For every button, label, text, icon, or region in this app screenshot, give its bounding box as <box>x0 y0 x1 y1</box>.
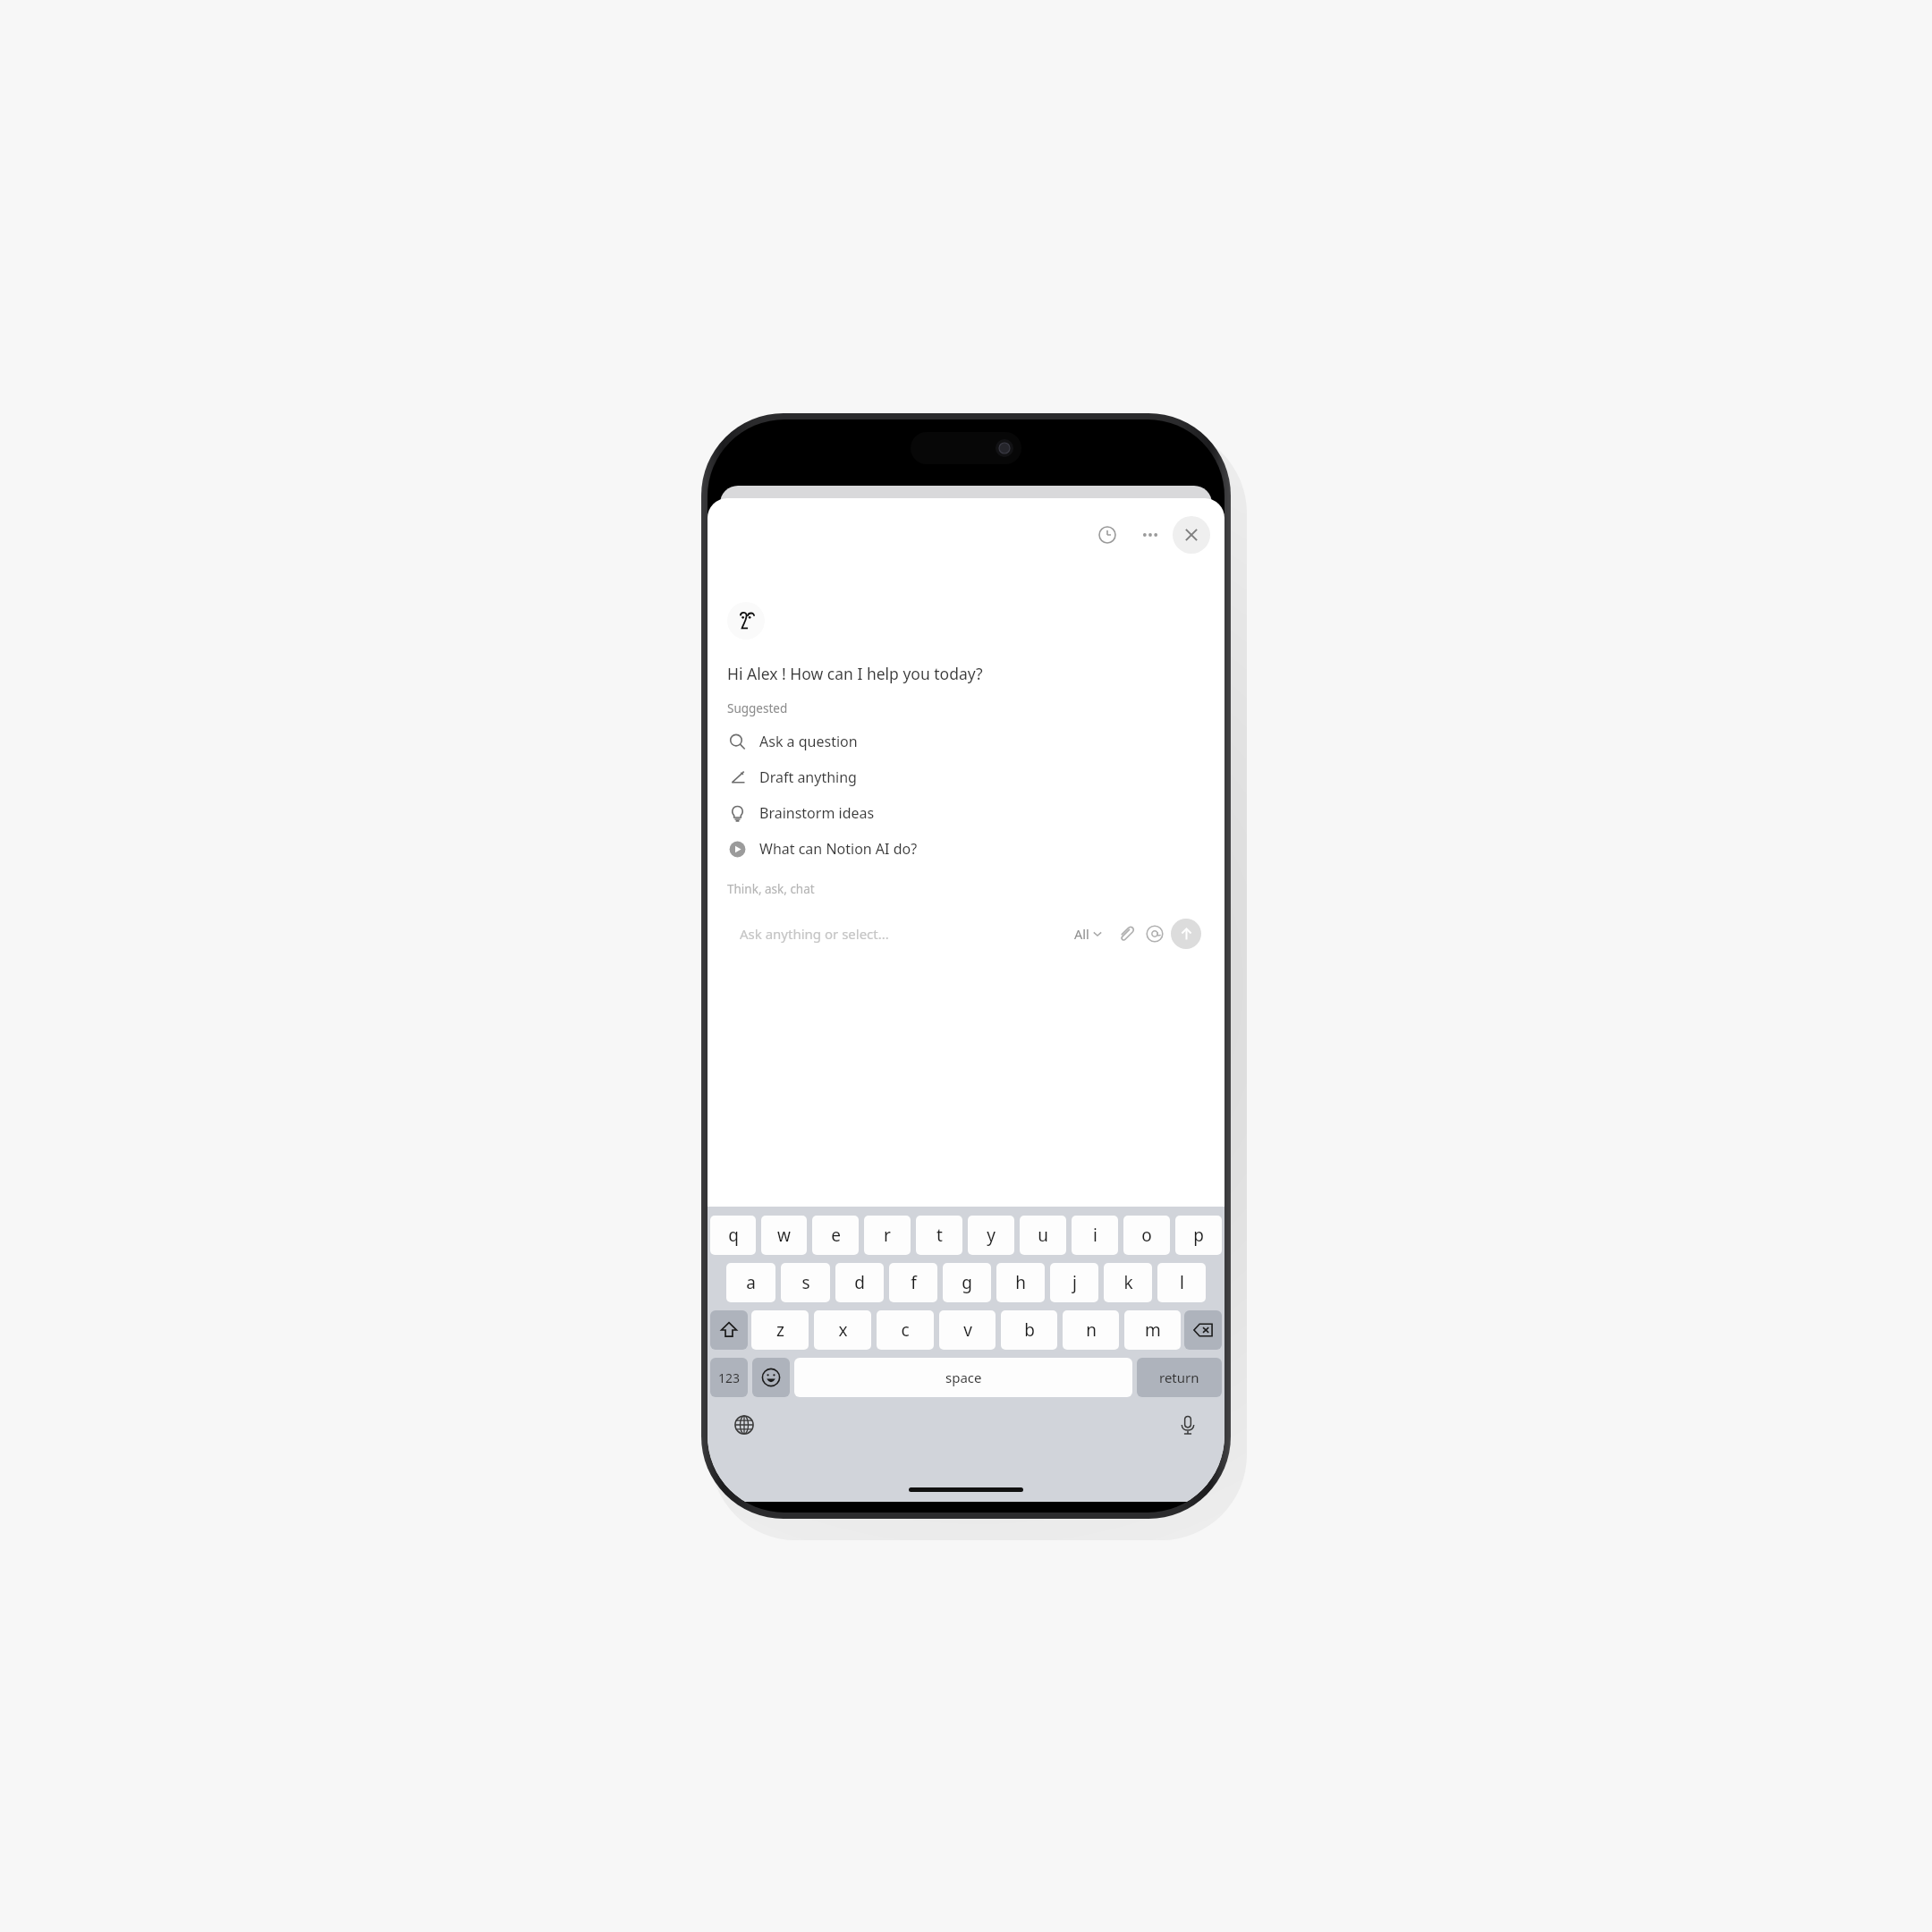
button[interactable]: Emoji <box>752 1358 790 1397</box>
button[interactable]: Backspace <box>1184 1310 1222 1350</box>
button[interactable]: x <box>814 1310 871 1350</box>
button[interactable]: s <box>781 1263 830 1302</box>
staticText: s <box>801 1271 810 1294</box>
button[interactable]: v <box>939 1310 996 1350</box>
button[interactable]: w <box>761 1216 807 1255</box>
button[interactable]: More options <box>1131 516 1169 554</box>
staticText: y <box>987 1224 996 1247</box>
button[interactable]: f <box>889 1263 937 1302</box>
staticText: b <box>1024 1318 1035 1342</box>
staticText: Ask anything or select... <box>740 925 889 943</box>
staticText: z <box>776 1318 784 1342</box>
button[interactable]: t <box>916 1216 962 1255</box>
button[interactable]: y <box>968 1216 1014 1255</box>
button[interactable]: Notion AI <box>727 602 765 640</box>
button[interactable]: All <box>1071 925 1106 943</box>
staticText: return <box>1159 1368 1199 1386</box>
staticText: u <box>1038 1224 1048 1247</box>
button[interactable]: p <box>1175 1216 1222 1255</box>
staticText: p <box>1193 1224 1204 1247</box>
staticText: m <box>1145 1318 1161 1342</box>
staticText: Suggested <box>727 700 788 716</box>
staticText: t <box>936 1224 943 1247</box>
button[interactable]: Draft anything <box>708 759 1224 795</box>
button[interactable]: m <box>1124 1310 1181 1350</box>
button[interactable]: j <box>1050 1263 1098 1302</box>
button[interactable]: i <box>1072 1216 1118 1255</box>
staticText: r <box>884 1224 891 1247</box>
button[interactable]: Change keyboard <box>729 1410 759 1440</box>
staticText: x <box>838 1318 848 1342</box>
button[interactable]: Shift <box>710 1310 748 1350</box>
button[interactable]: z <box>751 1310 809 1350</box>
button[interactable]: u <box>1020 1216 1066 1255</box>
button[interactable]: space <box>794 1358 1132 1397</box>
staticText: Hi Alex ! How can I help you today? <box>727 663 983 684</box>
button[interactable]: Send <box>1171 919 1201 949</box>
staticText: f <box>911 1271 917 1294</box>
staticText: a <box>746 1271 756 1294</box>
button[interactable]: Brainstorm ideas <box>708 795 1224 831</box>
button[interactable]: e <box>812 1216 859 1255</box>
button[interactable]: b <box>1001 1310 1057 1350</box>
staticText: d <box>854 1271 865 1294</box>
staticText: o <box>1141 1224 1152 1247</box>
button[interactable]: g <box>943 1263 991 1302</box>
button[interactable]: l <box>1157 1263 1206 1302</box>
staticText: Think, ask, chat <box>727 881 815 897</box>
staticText: l <box>1180 1271 1184 1294</box>
staticText: g <box>962 1271 972 1294</box>
staticText: q <box>728 1224 739 1247</box>
button[interactable]: o <box>1123 1216 1170 1255</box>
button[interactable]: Mention <box>1141 920 1168 947</box>
staticText: space <box>945 1368 982 1386</box>
staticText: 123 <box>718 1369 741 1386</box>
button[interactable]: Ask a question <box>708 724 1224 759</box>
button[interactable]: c <box>877 1310 934 1350</box>
button[interactable]: 123 <box>710 1358 748 1397</box>
button[interactable]: a <box>726 1263 775 1302</box>
staticText: v <box>963 1318 972 1342</box>
staticText: c <box>901 1318 910 1342</box>
button[interactable]: n <box>1063 1310 1119 1350</box>
button[interactable]: h <box>996 1263 1045 1302</box>
button[interactable]: k <box>1104 1263 1152 1302</box>
staticText: i <box>1093 1224 1097 1247</box>
button[interactable]: d <box>835 1263 884 1302</box>
staticText: h <box>1015 1271 1026 1294</box>
staticText: Brainstorm ideas <box>759 803 875 823</box>
button[interactable]: q <box>710 1216 756 1255</box>
staticText: w <box>777 1224 791 1247</box>
staticText: Draft anything <box>759 767 857 787</box>
button[interactable]: Ask anything or select... <box>724 911 1208 956</box>
button[interactable]: r <box>864 1216 911 1255</box>
button[interactable]: Close <box>1173 516 1210 554</box>
button[interactable]: Dictate <box>1173 1410 1203 1440</box>
staticText: All <box>1074 925 1089 943</box>
button[interactable]: What can Notion AI do? <box>708 831 1224 867</box>
staticText: Ask a question <box>759 732 858 751</box>
staticText: j <box>1072 1271 1077 1294</box>
button[interactable]: return <box>1137 1358 1222 1397</box>
button[interactable]: Attach file <box>1113 920 1140 947</box>
staticText: n <box>1086 1318 1097 1342</box>
staticText: e <box>831 1224 841 1247</box>
button[interactable]: History <box>1089 516 1126 554</box>
staticText: What can Notion AI do? <box>759 839 918 859</box>
staticText: k <box>1123 1271 1133 1294</box>
